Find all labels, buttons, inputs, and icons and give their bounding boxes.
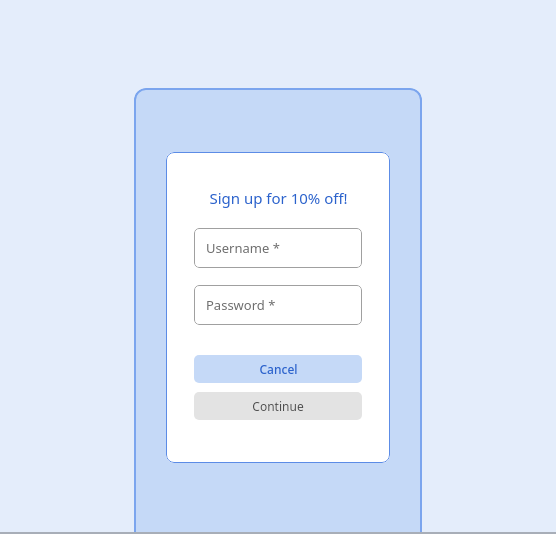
- staticText: Continue: [252, 398, 304, 414]
- staticText: Cancel: [259, 361, 298, 377]
- button[interactable]: Cancel: [194, 355, 362, 383]
- button[interactable]: Username *: [194, 228, 362, 268]
- button[interactable]: Continue: [194, 392, 362, 420]
- button[interactable]: Password *: [194, 285, 362, 325]
- staticText: Password *: [206, 296, 276, 314]
- staticText: Username *: [206, 239, 280, 257]
- staticText: Sign up for 10% off!: [209, 188, 348, 208]
